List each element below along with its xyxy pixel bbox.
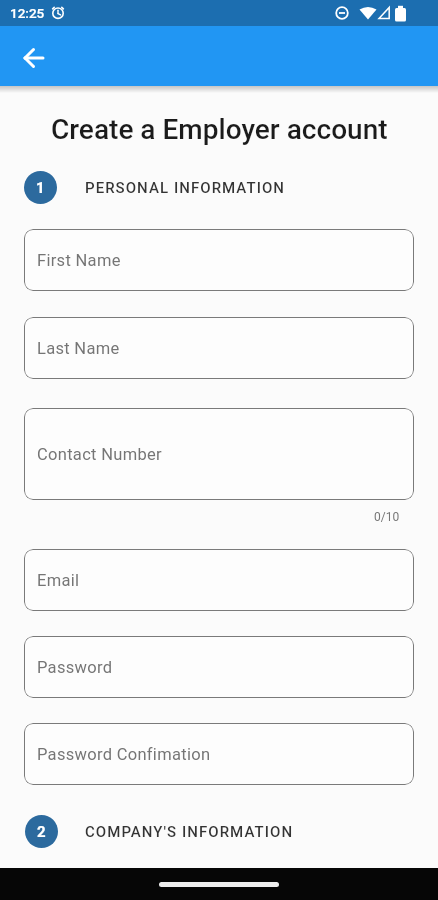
staticText: First Name [37,251,121,270]
button[interactable]: Password Confimation [24,723,414,785]
button[interactable]: Last Name [24,317,414,379]
staticText: COMPANY'S INFORMATION [85,823,294,841]
staticText: PERSONAL INFORMATION [85,179,286,197]
staticText: 0/10 [374,510,400,524]
button[interactable] [9,33,57,81]
button[interactable]: Contact Number [24,408,414,500]
staticText: 1 [36,179,45,197]
button[interactable]: First Name [24,229,414,291]
staticText: Password Confimation [37,745,211,764]
button[interactable] [0,868,438,900]
staticText: Email [37,571,80,590]
button[interactable]: Password [24,636,414,698]
staticText: 2 [37,823,46,841]
staticText: Password [37,658,113,677]
button[interactable]: Email [24,549,414,611]
staticText: 12:25 [10,5,45,21]
staticText: Create a Employer account [51,113,388,146]
staticText: Last Name [37,339,120,358]
staticText: Contact Number [37,445,162,464]
